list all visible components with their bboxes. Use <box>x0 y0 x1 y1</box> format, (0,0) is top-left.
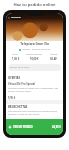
staticText: VER MI PEDIDO <box>13 125 33 129</box>
staticText: 10,00 € <box>30 57 39 60</box>
other: Atrás <box>8 17 10 19</box>
staticText: OFERTAS <box>8 76 61 80</box>
staticText: 9,95 € <box>8 96 16 99</box>
button[interactable]: Carrito <box>6 119 63 135</box>
staticText: Abierto · Cierra a las 23:30 <box>22 48 51 51</box>
other: Carrito <box>8 125 12 129</box>
staticText: TIEMPO <box>50 53 58 56</box>
staticText: Telepizza Gran Vía <box>6 42 63 46</box>
button[interactable]: Atrás <box>7 15 22 20</box>
staticText: Haz tu pedido online <box>0 2 69 8</box>
staticText: 1,50 € <box>12 57 20 60</box>
button[interactable]: Buscar en la carta <box>8 64 61 71</box>
staticText: BRUSCHETTAS <box>8 105 61 109</box>
staticText: Buscar en la carta <box>10 66 30 69</box>
staticText: 24,85 € <box>52 125 61 129</box>
staticText: 30-40' <box>50 57 58 60</box>
staticText: Una pizza mediana a elegir con 2 ingredi… <box>8 87 61 93</box>
staticText: ENVÍO <box>12 53 19 56</box>
staticText: Telepizza <box>11 16 21 19</box>
button[interactable]: Virtual Kit Pro Special <box>6 82 63 100</box>
staticText: Virtual Kit Pro Special <box>8 82 36 86</box>
staticText: Pan artesano recién horneado con tomate … <box>8 110 61 116</box>
staticText: PEDIDO MÍNIMO <box>26 53 43 56</box>
